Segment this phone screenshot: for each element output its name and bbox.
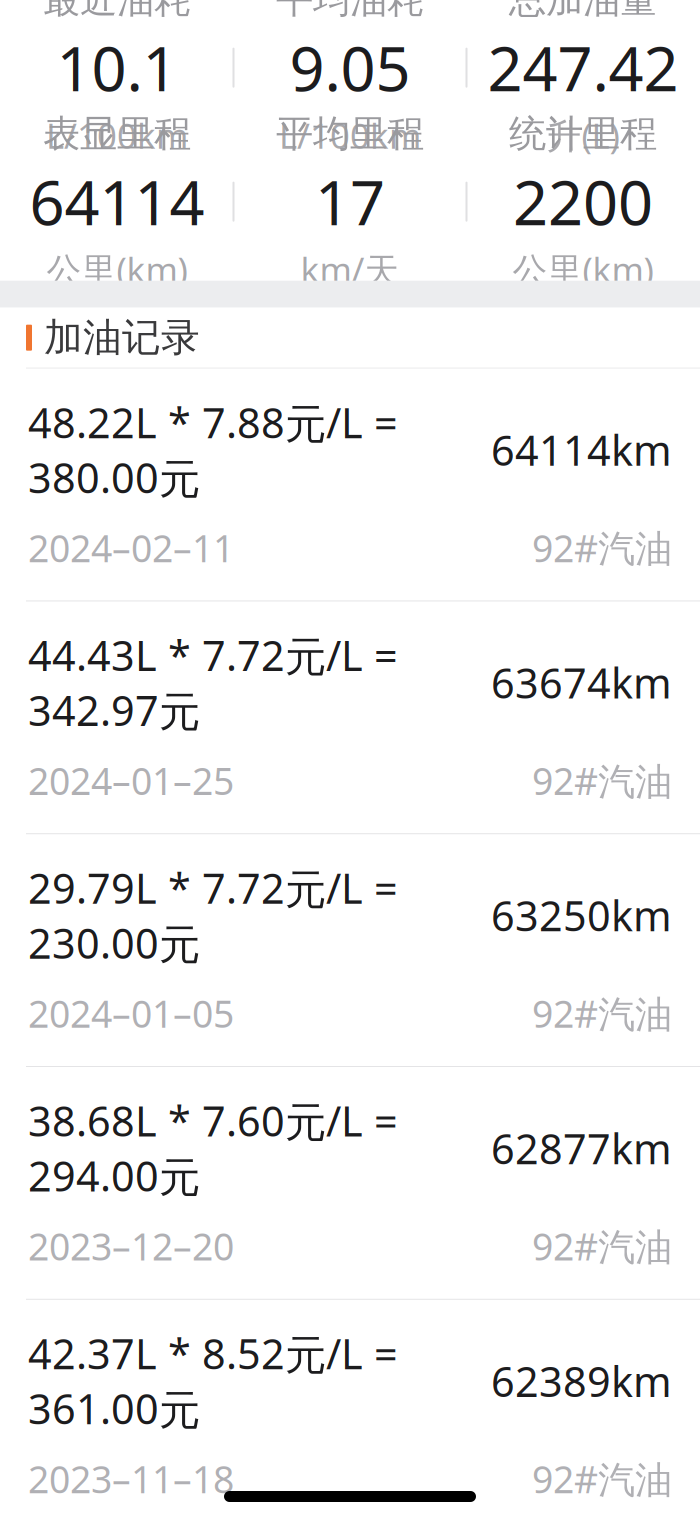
- staticText: 加油记录: [44, 314, 200, 361]
- staticText: 64114km: [491, 422, 672, 477]
- staticText: 92#汽油: [532, 1454, 672, 1504]
- staticText: 最近油耗: [43, 0, 191, 23]
- staticText: 64114: [29, 161, 204, 242]
- staticText: 2024–01–25: [28, 756, 234, 805]
- staticText: 平均油耗: [276, 0, 424, 23]
- staticText: 44.43L * 7.72元/L = 342.97元: [28, 627, 398, 738]
- staticText: 48.22L * 7.88元/L = 380.00元: [28, 395, 398, 505]
- staticText: 2023–12–20: [28, 1221, 234, 1271]
- staticText: 总加油量: [509, 0, 657, 23]
- staticText: 1.0T 2016年: [100, 0, 304, 6]
- staticText: 统计里程: [509, 111, 657, 157]
- staticText: 42.37L * 8.52元/L = 361.00元: [28, 1326, 398, 1436]
- staticText: 公里(km): [46, 246, 187, 292]
- button[interactable]: 42.37L * 8.52元/L = 361.00元: [0, 1300, 700, 1514]
- staticText: 38.68L * 7.60元/L = 294.00元: [28, 1093, 398, 1203]
- staticText: 62877km: [491, 1121, 672, 1176]
- staticText: 升(L): [546, 112, 619, 158]
- staticText: 10.1: [56, 27, 177, 108]
- staticText: 92#汽油: [532, 1221, 672, 1271]
- staticText: 63674km: [491, 655, 672, 710]
- staticText: 62389km: [491, 1353, 672, 1408]
- button[interactable]: 29.79L * 7.72元/L = 230.00元: [0, 834, 700, 1067]
- staticText: 表显里程: [43, 111, 191, 157]
- staticText: 公里(km): [512, 246, 653, 292]
- staticText: 17: [315, 161, 385, 242]
- staticText: 2024–01–05: [28, 988, 234, 1038]
- staticText: L/100km: [46, 112, 188, 158]
- staticText: 2024–02–11: [28, 523, 234, 572]
- staticText: 29.79L * 7.72元/L = 230.00元: [28, 860, 398, 970]
- staticText: 2023–11–18: [28, 1454, 234, 1504]
- staticText: 92#汽油: [532, 988, 672, 1038]
- staticText: 92#汽油: [532, 523, 672, 572]
- button[interactable]: 48.22L * 7.88元/L = 380.00元: [0, 369, 700, 601]
- staticText: 9.05: [289, 27, 410, 108]
- staticText: 247.42: [487, 27, 678, 108]
- staticText: km/天: [300, 246, 399, 292]
- button[interactable]: 44.43L * 7.72元/L = 342.97元: [0, 601, 700, 834]
- staticText: 92#汽油: [532, 756, 672, 805]
- staticText: L/100km: [279, 112, 421, 158]
- staticText: 63250km: [491, 888, 672, 943]
- button[interactable]: 38.68L * 7.60元/L = 294.00元: [0, 1067, 700, 1300]
- staticText: 平均里程: [276, 111, 424, 157]
- staticText: 2200: [513, 161, 653, 242]
